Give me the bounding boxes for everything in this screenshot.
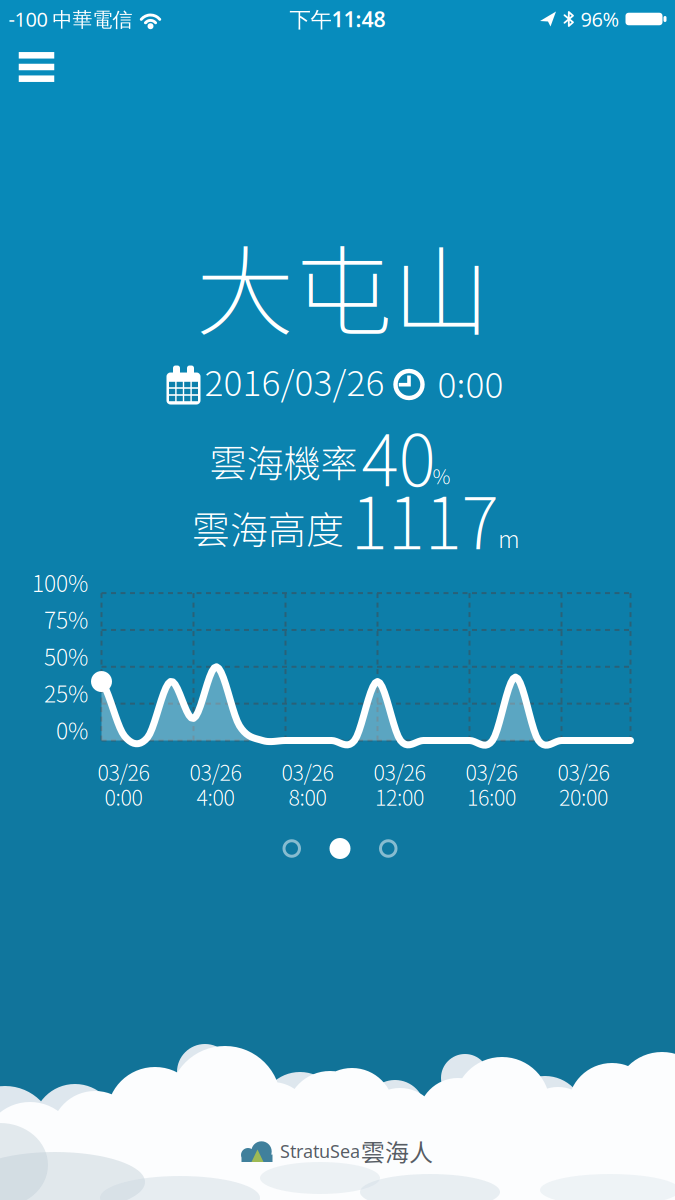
staticText: 03/26 (465, 756, 517, 787)
button[interactable]: Page 2 (329, 838, 350, 859)
staticText: StratuSea (280, 1139, 360, 1163)
staticText: 1117 (350, 467, 498, 570)
staticText: 雲海機率 (209, 434, 357, 488)
staticText: 25% (44, 676, 88, 709)
staticText: 03/26 (189, 756, 241, 787)
button[interactable]: Page 3 (380, 841, 396, 856)
staticText: 0% (56, 713, 88, 746)
staticText: 0:00 (437, 357, 503, 408)
staticText: 03/26 (281, 756, 333, 787)
staticText: m (498, 520, 520, 555)
staticText: % (432, 461, 450, 490)
staticText: 下午11:48 (289, 5, 385, 33)
staticText: 96% (580, 6, 619, 32)
staticText: 100% (32, 566, 88, 598)
staticText: 4:00 (196, 781, 234, 812)
staticText: 大屯山 (196, 214, 490, 356)
staticText: 16:00 (467, 781, 516, 812)
staticText: 03/26 (373, 756, 425, 787)
staticText: 0:00 (104, 781, 142, 812)
button[interactable]: Menu (12, 45, 60, 89)
staticText: 03/26 (557, 756, 609, 787)
staticText: 03/26 (97, 756, 149, 787)
staticText: 雲海高度 (192, 500, 344, 555)
staticText: 20:00 (559, 781, 608, 812)
staticText: 雲海人 (361, 1134, 433, 1168)
staticText: 8:00 (288, 781, 326, 812)
button[interactable]: Page 1 (284, 841, 299, 856)
staticText: 12:00 (375, 781, 424, 812)
staticText: 50% (44, 639, 88, 672)
staticText: 2016/03/26 (204, 355, 384, 406)
staticText: 75% (44, 602, 88, 635)
staticText: 40 (361, 404, 435, 507)
staticText: -100 中華電信 (8, 6, 132, 32)
